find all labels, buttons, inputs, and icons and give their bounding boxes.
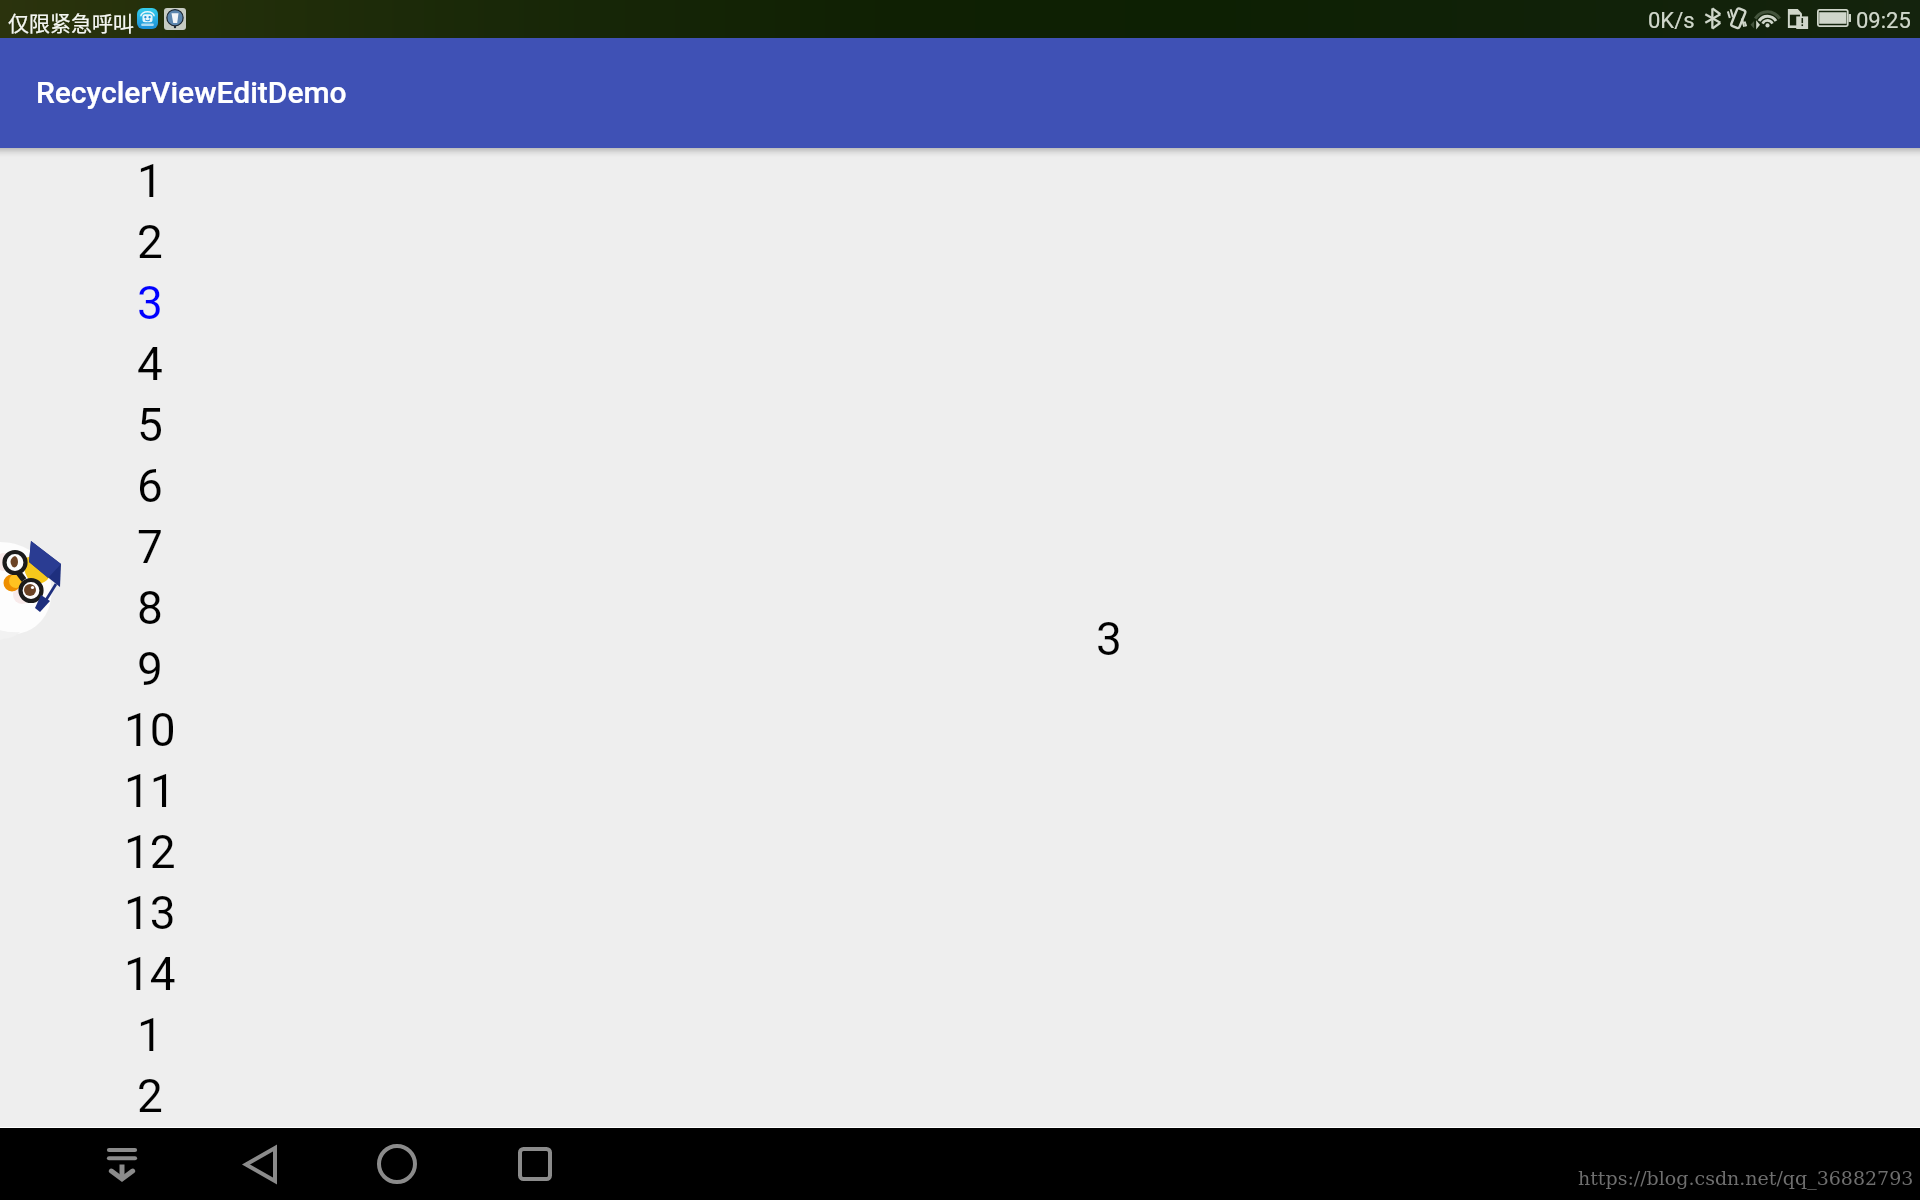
staticText: 2 bbox=[137, 1069, 163, 1123]
staticText: 14 bbox=[124, 947, 176, 1001]
staticText: 6 bbox=[137, 459, 163, 513]
button[interactable]: 3 bbox=[1096, 612, 1122, 666]
button[interactable]: 4 bbox=[0, 333, 1920, 394]
staticText: 13 bbox=[124, 886, 176, 940]
button[interactable]: 8 bbox=[0, 577, 1920, 638]
staticText: 3 bbox=[137, 276, 163, 330]
button[interactable]: 2 bbox=[0, 1065, 1920, 1126]
staticText: 11 bbox=[124, 764, 176, 818]
staticText: 10 bbox=[124, 703, 176, 757]
button[interactable]: 3 bbox=[0, 272, 1920, 333]
staticText: 仅限紧急呼叫 bbox=[8, 7, 134, 37]
staticText: 1 bbox=[137, 154, 163, 208]
button[interactable]: 12 bbox=[0, 821, 1920, 882]
button[interactable]: Hide keyboard bbox=[86, 1128, 158, 1200]
staticText: 8 bbox=[137, 581, 163, 635]
button[interactable]: Recent apps bbox=[499, 1128, 571, 1200]
button[interactable]: 1 bbox=[0, 1004, 1920, 1065]
staticText: 5 bbox=[137, 398, 163, 452]
button[interactable]: 2 bbox=[0, 211, 1920, 272]
button[interactable]: 10 bbox=[0, 699, 1920, 760]
staticText: 1 bbox=[137, 1008, 163, 1062]
button[interactable]: 11 bbox=[0, 760, 1920, 821]
staticText: 12 bbox=[124, 825, 176, 879]
staticText: 9 bbox=[137, 642, 163, 696]
staticText: https://blog.csdn.net/qq_36882793 bbox=[1578, 1167, 1914, 1189]
button[interactable]: 13 bbox=[0, 882, 1920, 943]
staticText: RecyclerViewEditDemo bbox=[36, 75, 347, 110]
button[interactable]: 6 bbox=[0, 455, 1920, 516]
button[interactable]: 9 bbox=[0, 638, 1920, 699]
button[interactable]: 5 bbox=[0, 394, 1920, 455]
button[interactable]: Home bbox=[361, 1128, 433, 1200]
staticText: 0K/s bbox=[1648, 8, 1695, 34]
button[interactable]: 1 bbox=[0, 150, 1920, 211]
button[interactable]: 7 bbox=[0, 516, 1920, 577]
button[interactable]: Back bbox=[224, 1128, 296, 1200]
staticText: 2 bbox=[137, 215, 163, 269]
staticText: 4 bbox=[137, 337, 163, 391]
button[interactable]: 14 bbox=[0, 943, 1920, 1004]
staticText: 09:25 bbox=[1856, 8, 1911, 34]
staticText: 7 bbox=[137, 520, 163, 574]
